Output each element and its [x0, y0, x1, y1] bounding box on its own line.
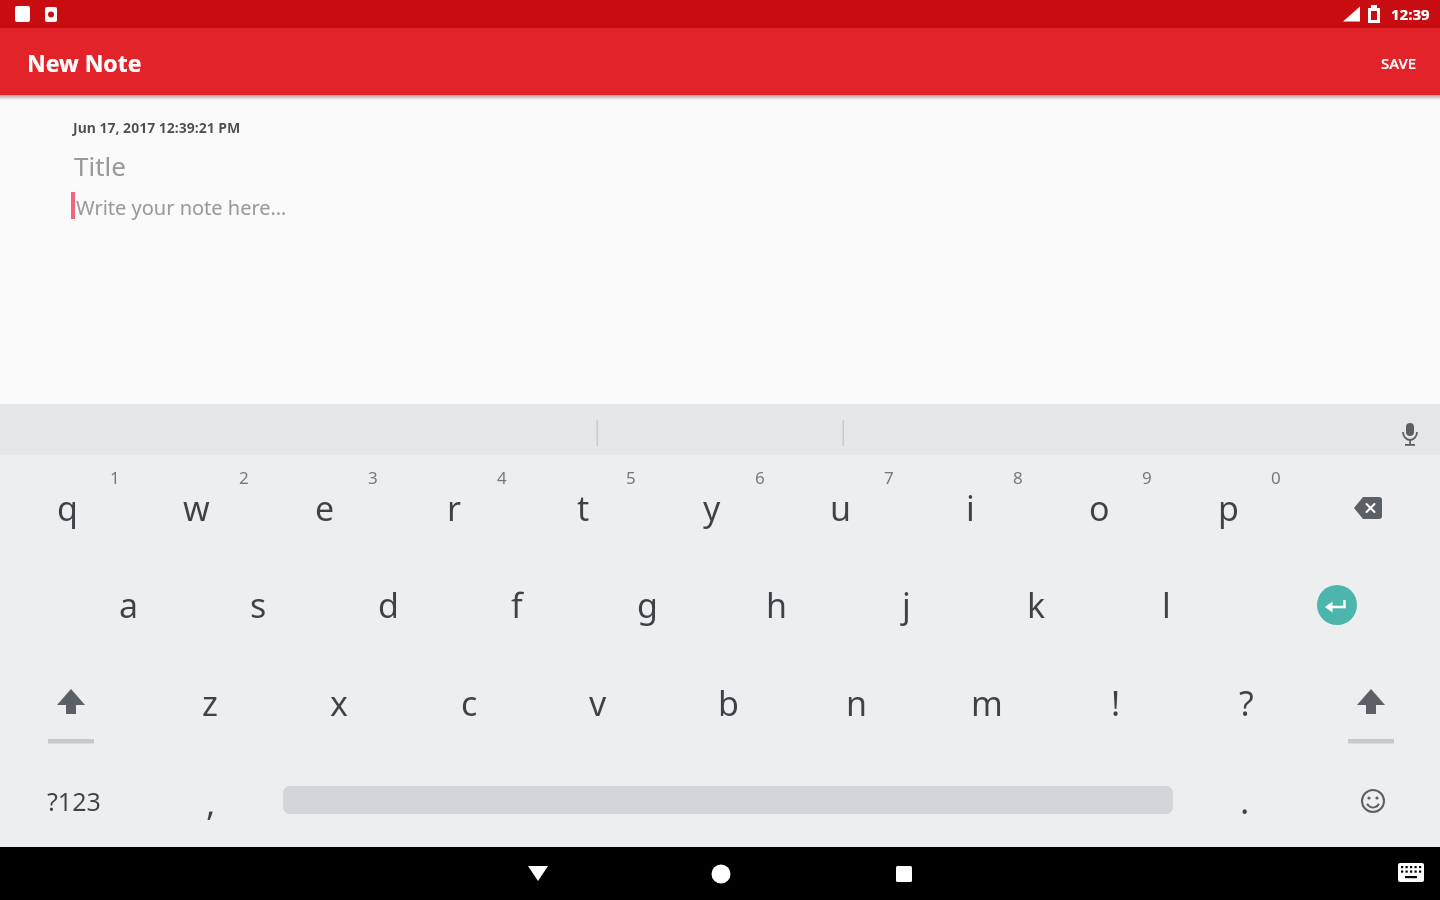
- staticText: Title: [74, 148, 126, 183]
- button[interactable]: a: [74, 560, 184, 650]
- staticText: p: [1218, 485, 1239, 531]
- staticText: ?: [1239, 680, 1254, 726]
- staticText: v: [589, 680, 607, 726]
- staticText: 3: [368, 466, 378, 489]
- staticText: Jun 17, 2017 12:39:21 PM: [73, 118, 241, 137]
- staticText: 7: [884, 466, 894, 489]
- button[interactable]: j: [851, 560, 961, 650]
- button[interactable]: s: [203, 560, 313, 650]
- staticText: o: [1089, 485, 1110, 531]
- button[interactable]: [0, 404, 1440, 455]
- staticText: c: [461, 680, 478, 726]
- button[interactable]: c: [414, 658, 524, 748]
- button[interactable]: [1317, 658, 1427, 748]
- button[interactable]: m: [932, 658, 1042, 748]
- staticText: j: [902, 582, 911, 628]
- button[interactable]: u: [786, 463, 896, 553]
- button[interactable]: i: [915, 463, 1025, 553]
- staticText: New Note: [27, 47, 142, 78]
- button[interactable]: [854, 848, 954, 900]
- staticText: r: [447, 485, 462, 531]
- staticText: !: [1111, 680, 1121, 726]
- button[interactable]: .: [1190, 756, 1300, 846]
- button[interactable]: ?: [1191, 658, 1301, 748]
- button[interactable]: o: [1044, 463, 1154, 553]
- button[interactable]: n: [802, 658, 912, 748]
- staticText: s: [250, 582, 267, 628]
- button[interactable]: p: [1173, 463, 1283, 553]
- button[interactable]: e: [270, 463, 380, 553]
- button[interactable]: [1328, 756, 1418, 846]
- staticText: 0: [1271, 466, 1281, 489]
- staticText: e: [315, 485, 335, 531]
- button[interactable]: l: [1111, 560, 1221, 650]
- button[interactable]: k: [981, 560, 1091, 650]
- staticText: 2: [239, 466, 249, 489]
- staticText: 4: [497, 466, 507, 489]
- button[interactable]: [1317, 585, 1357, 625]
- staticText: 1: [110, 466, 120, 489]
- staticText: 6: [755, 466, 765, 489]
- staticText: 5: [626, 466, 636, 489]
- button[interactable]: y: [657, 463, 767, 553]
- button[interactable]: z: [155, 658, 265, 748]
- button[interactable]: b: [673, 658, 783, 748]
- staticText: g: [637, 582, 658, 628]
- button[interactable]: [1381, 848, 1440, 900]
- staticText: ,: [206, 779, 216, 827]
- staticText: .: [1240, 777, 1250, 825]
- button[interactable]: x: [284, 658, 394, 748]
- staticText: ?123: [47, 784, 101, 818]
- button[interactable]: [1308, 463, 1428, 553]
- staticText: i: [966, 485, 975, 531]
- button[interactable]: f: [462, 560, 572, 650]
- staticText: a: [119, 582, 139, 628]
- button[interactable]: r: [399, 463, 509, 553]
- staticText: w: [183, 485, 210, 531]
- staticText: b: [718, 680, 739, 726]
- staticText: z: [202, 680, 218, 726]
- button[interactable]: t: [528, 463, 638, 553]
- staticText: f: [511, 582, 523, 628]
- staticText: q: [57, 485, 78, 531]
- button[interactable]: !: [1061, 658, 1171, 748]
- staticText: Write your note here…: [76, 194, 287, 221]
- button[interactable]: w: [141, 463, 251, 553]
- button[interactable]: ,: [156, 758, 266, 848]
- button[interactable]: [17, 658, 127, 748]
- button[interactable]: ?123: [19, 756, 129, 846]
- staticText: l: [1162, 582, 1171, 628]
- staticText: h: [766, 582, 788, 628]
- staticText: u: [830, 485, 852, 531]
- button[interactable]: v: [543, 658, 653, 748]
- button[interactable]: h: [722, 560, 832, 650]
- button[interactable]: SAVE: [1354, 29, 1440, 96]
- button[interactable]: [488, 848, 588, 900]
- staticText: x: [330, 680, 348, 726]
- staticText: t: [577, 485, 590, 531]
- staticText: y: [703, 485, 721, 531]
- staticText: n: [846, 680, 868, 726]
- staticText: d: [378, 582, 399, 628]
- staticText: SAVE: [1381, 53, 1417, 73]
- staticText: 12:39: [1391, 4, 1430, 24]
- button[interactable]: g: [592, 560, 702, 650]
- staticText: k: [1027, 582, 1046, 628]
- staticText: m: [971, 680, 1003, 726]
- button[interactable]: d: [333, 560, 443, 650]
- button[interactable]: q: [12, 463, 122, 553]
- button[interactable]: [671, 848, 771, 900]
- staticText: 8: [1013, 466, 1023, 489]
- staticText: 9: [1142, 466, 1152, 489]
